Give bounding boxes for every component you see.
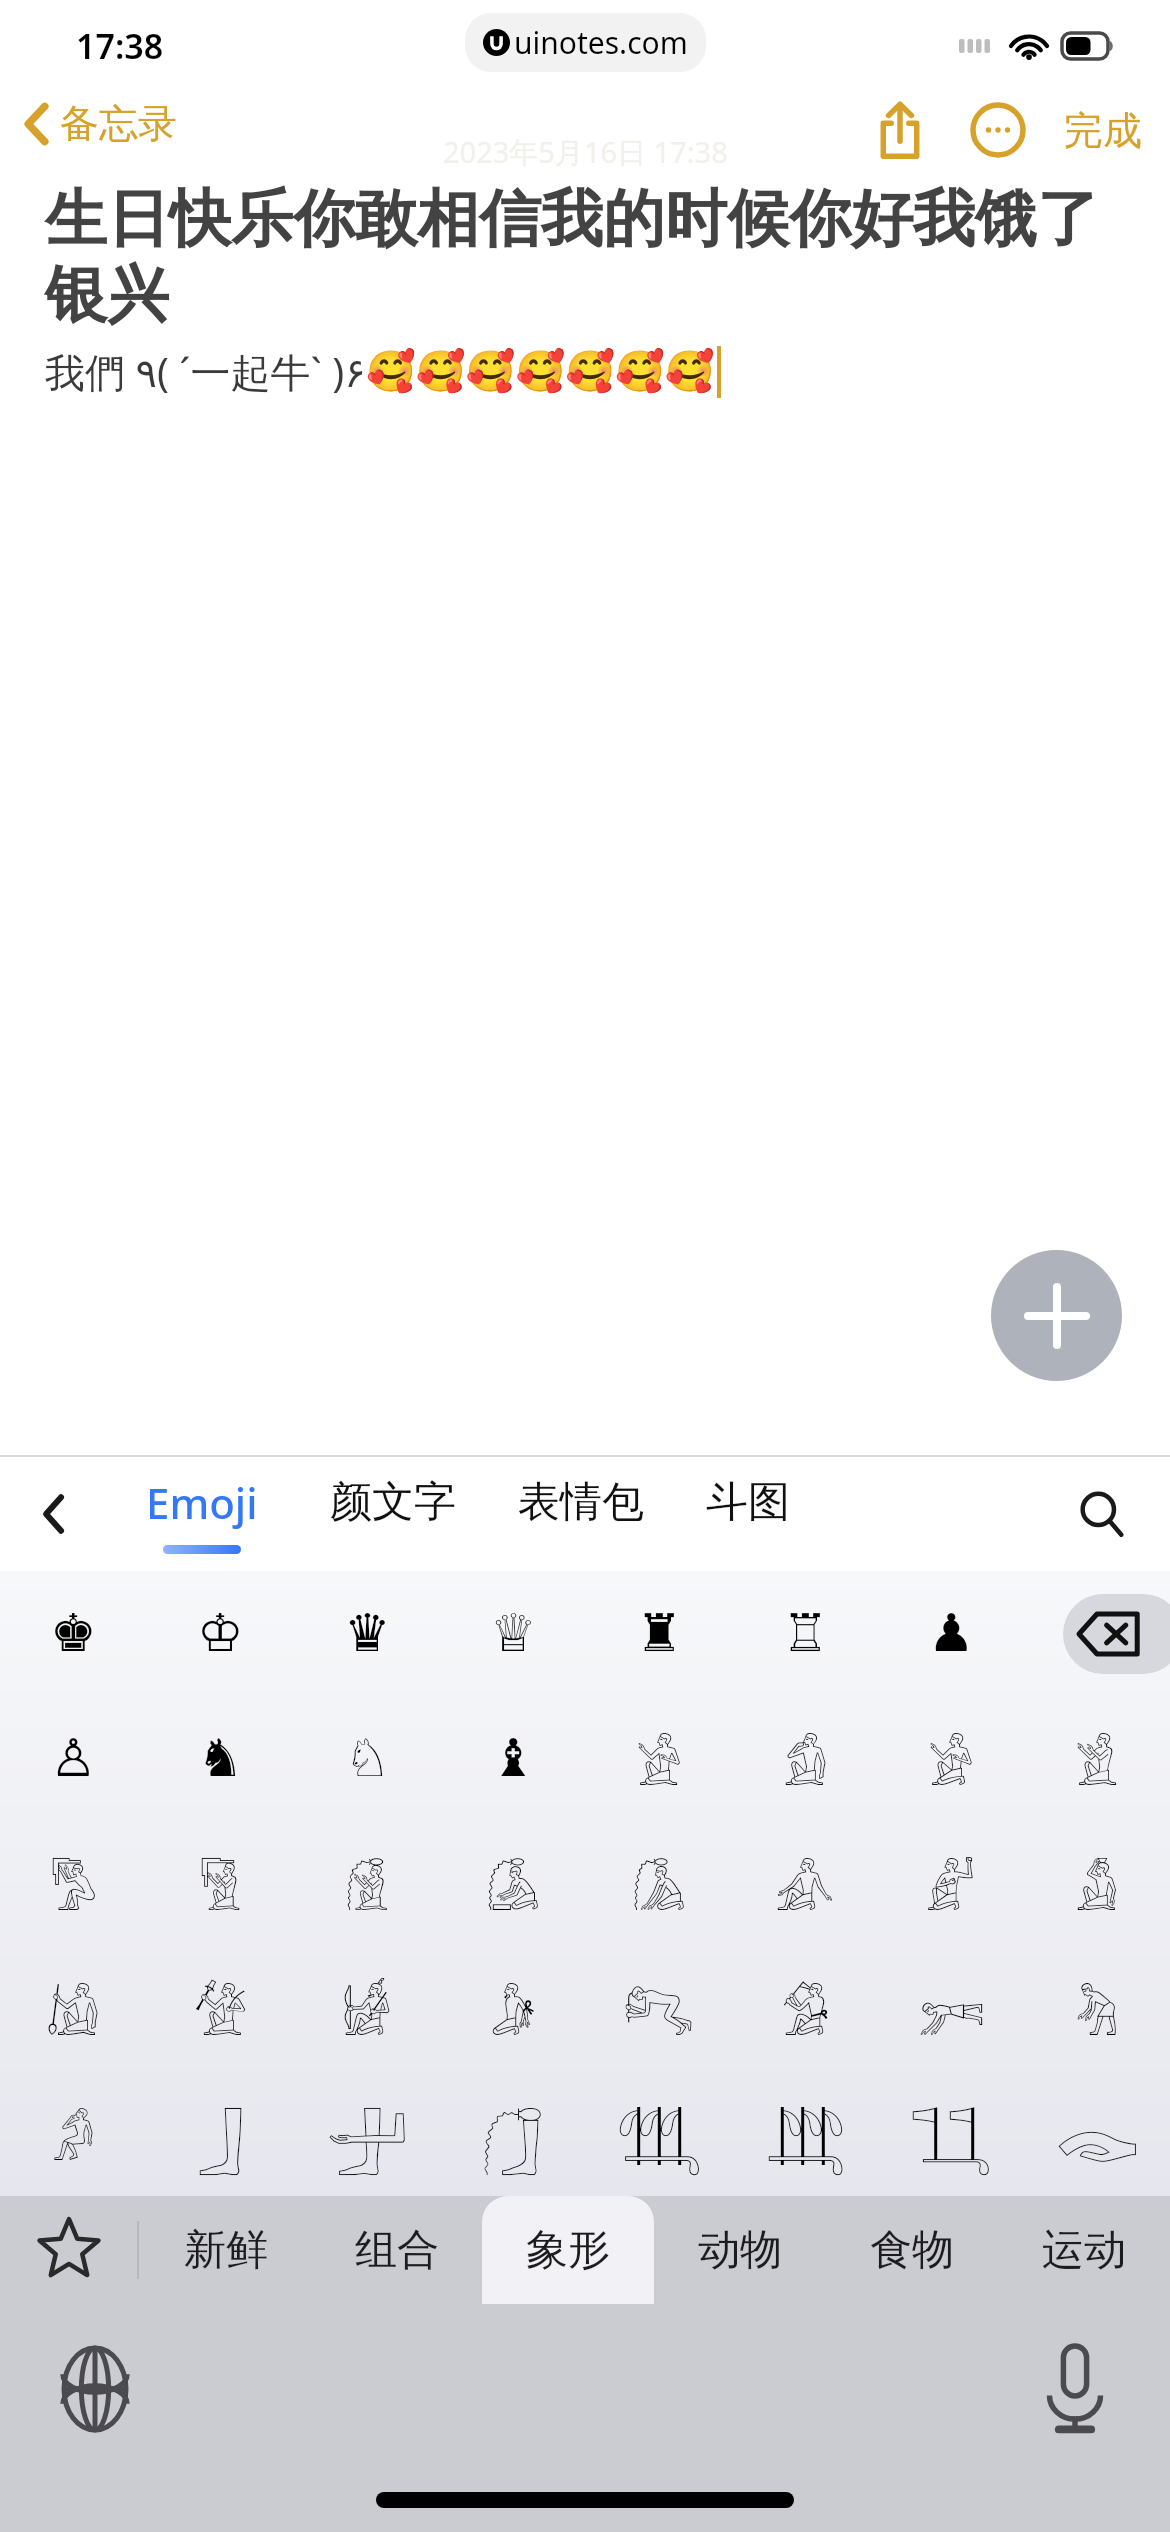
staticText: 𓀐 <box>623 1966 695 2052</box>
button[interactable]: 𓀏 <box>440 1946 586 2071</box>
button[interactable]: 𓀅 <box>147 1821 294 1946</box>
staticText: 完成 <box>1064 106 1142 155</box>
staticText: 𓀄 <box>50 1841 98 1927</box>
staticText: 运动 <box>1042 2224 1126 2277</box>
staticText: ♛ <box>344 1603 391 1664</box>
button[interactable]: More options <box>956 88 1040 172</box>
button[interactable]: Dictation <box>1020 2334 1130 2444</box>
staticText: 表情包 <box>518 1476 644 1529</box>
staticText: 新鲜 <box>184 2224 268 2277</box>
staticText: 𓀏 <box>490 1966 537 2052</box>
button[interactable]: 𓀁 <box>732 1696 878 1821</box>
button[interactable]: Delete <box>1024 1571 1170 1696</box>
button[interactable]: Add <box>991 1250 1122 1381</box>
button[interactable]: 𓀄 <box>0 1821 147 1946</box>
button[interactable]: 𓃅 <box>878 2071 1024 2196</box>
staticText: 𓀀 <box>636 1716 683 1802</box>
button[interactable]: ♘ <box>294 1696 440 1821</box>
button[interactable]: ♜ <box>586 1571 732 1696</box>
button[interactable]: ♟ <box>878 1571 1024 1696</box>
button[interactable]: Switch keyboard <box>40 2334 150 2444</box>
button[interactable]: 备忘录 <box>14 93 187 154</box>
button[interactable]: Search <box>1064 1476 1140 1552</box>
button[interactable]: 𓃆 <box>1024 2071 1170 2196</box>
button[interactable]: 𓀌 <box>0 1946 147 2071</box>
staticText: 𓀌 <box>46 1966 101 2052</box>
button[interactable]: 完成 <box>1054 94 1152 167</box>
staticText: Emoji <box>146 1474 258 1531</box>
button[interactable]: 𓃀 <box>147 2071 294 2196</box>
staticText: 𓀍 <box>193 1966 248 2052</box>
button[interactable]: ♖ <box>732 1571 878 1696</box>
button[interactable]: Emoji <box>140 1474 264 1554</box>
button[interactable]: Back <box>18 1478 90 1550</box>
button[interactable]: 组合 <box>311 2196 482 2304</box>
staticText: 𓀎 <box>342 1966 392 2052</box>
staticText: 𓃀 <box>197 2091 244 2177</box>
button[interactable]: 𓀎 <box>294 1946 440 2071</box>
staticText: ♟ <box>928 1603 975 1664</box>
button[interactable]: 𓀐 <box>586 1946 732 2071</box>
staticText: 𓀇 <box>486 1841 541 1927</box>
staticText: 𓃃 <box>617 2091 702 2177</box>
button[interactable]: 颜文字 <box>324 1476 462 1552</box>
button[interactable]: 斗图 <box>700 1476 796 1552</box>
staticText: 颜文字 <box>330 1476 456 1529</box>
button[interactable]: 𓀑 <box>732 1946 878 2071</box>
button[interactable]: 象形 <box>482 2196 654 2304</box>
staticText: ♔ <box>197 1603 244 1664</box>
staticText: 𓀒 <box>918 1966 985 2052</box>
button[interactable]: ♝ <box>440 1696 586 1821</box>
staticText: ♜ <box>636 1603 683 1664</box>
button[interactable]: ♛ <box>294 1571 440 1696</box>
staticText: 🥰🥰🥰🥰🥰🥰🥰 <box>366 348 715 395</box>
staticText: 𓀂 <box>928 1716 975 1802</box>
button[interactable]: ♚ <box>0 1571 147 1696</box>
button[interactable]: 𓀂 <box>878 1696 1024 1821</box>
button[interactable]: ♔ <box>147 1571 294 1696</box>
staticText: 𓃄 <box>766 2091 845 2177</box>
staticText: ♝ <box>490 1728 537 1789</box>
button[interactable]: 𓀈 <box>586 1821 732 1946</box>
staticText: 备忘录 <box>60 99 177 148</box>
button[interactable]: 𓀔 <box>0 2071 147 2196</box>
button[interactable]: 食物 <box>826 2196 998 2304</box>
button[interactable]: 𓀀 <box>586 1696 732 1821</box>
button[interactable]: 𓀍 <box>147 1946 294 2071</box>
staticText: 17:38 <box>76 23 164 69</box>
button[interactable]: 运动 <box>998 2196 1170 2304</box>
button[interactable]: 𓀒 <box>878 1946 1024 2071</box>
button[interactable]: 𓃂 <box>440 2071 586 2196</box>
staticText: 𓀔 <box>52 2091 96 2177</box>
button[interactable]: 𓃄 <box>732 2071 878 2196</box>
button[interactable]: 𓀋 <box>1024 1821 1170 1946</box>
button[interactable]: ♞ <box>147 1696 294 1821</box>
staticText: ♖ <box>782 1603 829 1664</box>
staticText: 𓃂 <box>482 2091 544 2177</box>
staticText: ♙ <box>50 1728 97 1789</box>
button[interactable]: Favorites <box>0 2196 138 2304</box>
button[interactable]: 𓀆 <box>294 1821 440 1946</box>
staticText: 𓀑 <box>781 1966 830 2052</box>
button[interactable]: 𓀓 <box>1024 1946 1170 2071</box>
staticText: 𓀊 <box>926 1841 976 1927</box>
button[interactable]: 新鲜 <box>140 2196 311 2304</box>
button[interactable]: 𓃃 <box>586 2071 732 2196</box>
button[interactable]: 𓀃 <box>1024 1696 1170 1821</box>
staticText: 食物 <box>870 2224 954 2277</box>
staticText: 𓀃 <box>1075 1716 1119 1802</box>
staticText: 生日快乐你敢相信我的时候你好我饿了银兴 <box>45 180 1130 334</box>
button[interactable]: 𓀇 <box>440 1821 586 1946</box>
button[interactable]: 𓃁 <box>294 2071 440 2196</box>
button[interactable]: Share <box>858 88 942 172</box>
button[interactable]: ♕ <box>440 1571 586 1696</box>
button[interactable]: ♙ <box>0 1696 147 1821</box>
staticText: 𓀆 <box>345 1841 389 1927</box>
button[interactable]: 𓀉 <box>732 1821 878 1946</box>
button[interactable]: 动物 <box>654 2196 826 2304</box>
staticText: 𓀉 <box>775 1841 835 1927</box>
staticText: 斗图 <box>706 1476 790 1529</box>
button[interactable]: 𓀊 <box>878 1821 1024 1946</box>
button[interactable]: 表情包 <box>512 1476 650 1552</box>
staticText: 动物 <box>698 2224 782 2277</box>
